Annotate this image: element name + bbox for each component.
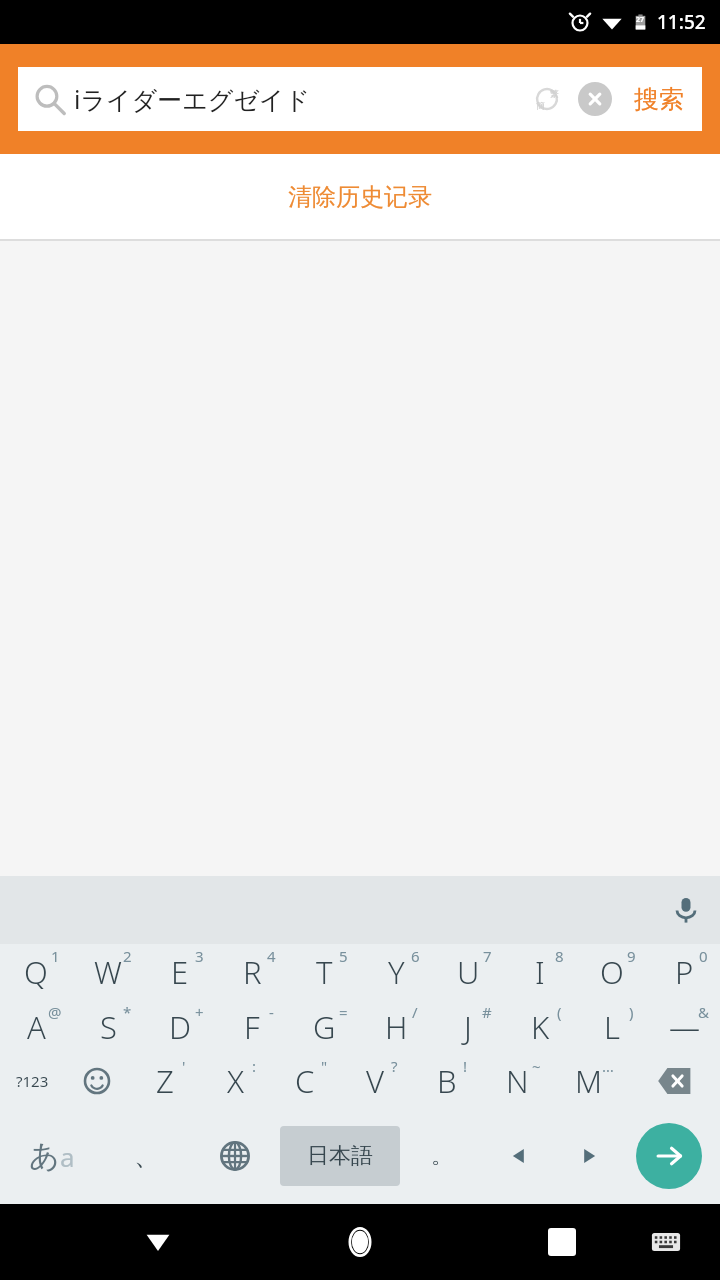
button[interactable]: X [200, 1054, 270, 1108]
staticText: ' [182, 1056, 186, 1076]
button[interactable]: V [340, 1054, 411, 1108]
staticText: U [457, 951, 480, 993]
staticText: ( [557, 1002, 562, 1022]
button[interactable]: Home [330, 1212, 390, 1272]
button[interactable]: P [648, 944, 720, 1000]
button[interactable]: Voice input [652, 876, 720, 944]
staticText: 清除历史记录 [288, 182, 432, 212]
staticText: ) [629, 1002, 634, 1022]
button[interactable]: B [411, 1054, 482, 1108]
staticText: = [339, 1002, 348, 1022]
staticText: - [269, 1002, 274, 1022]
button[interactable]: G [288, 1000, 360, 1054]
staticText: ? [391, 1056, 398, 1076]
button[interactable]: Z [130, 1054, 200, 1108]
button[interactable]: Clear text [578, 82, 612, 116]
staticText: @ [48, 1002, 62, 1022]
staticText: 、 [134, 1140, 160, 1173]
button[interactable]: K [504, 1000, 576, 1054]
button[interactable]: 、 [104, 1108, 190, 1204]
staticText: ?123 [16, 1071, 49, 1091]
button[interactable]: N [482, 1054, 553, 1108]
staticText: V [366, 1060, 385, 1102]
staticText: P [675, 951, 694, 993]
button[interactable]: E [144, 944, 216, 1000]
staticText: 7 [483, 946, 492, 966]
staticText: 。 [431, 1142, 453, 1170]
staticText: a [60, 1139, 75, 1174]
button[interactable]: 清除历史记录 [0, 154, 720, 239]
button[interactable]: A [0, 1000, 72, 1054]
button[interactable]: Move cursor left [484, 1108, 554, 1204]
button[interactable]: Symbols [0, 1054, 64, 1108]
button[interactable]: S [72, 1000, 144, 1054]
staticText: … [602, 1056, 614, 1076]
button[interactable]: W [72, 944, 144, 1000]
button[interactable]: Enter [636, 1123, 702, 1189]
button[interactable]: I [504, 944, 576, 1000]
staticText: F [244, 1006, 260, 1048]
staticText: R [243, 951, 262, 993]
button[interactable]: H [360, 1000, 432, 1054]
button[interactable]: L [576, 1000, 648, 1054]
staticText: A [27, 1006, 46, 1048]
staticText: C [295, 1060, 315, 1102]
staticText: 2 [123, 946, 132, 966]
staticText: 1 [51, 946, 60, 966]
button[interactable]: U [432, 944, 504, 1000]
button[interactable]: Move cursor right [554, 1108, 624, 1204]
button[interactable]: 搜索 [630, 84, 688, 115]
button[interactable]: — [648, 1000, 720, 1054]
button[interactable]: Hide keyboard [640, 1216, 692, 1268]
staticText: M [575, 1060, 603, 1102]
staticText: Z [156, 1060, 174, 1102]
button[interactable]: J [432, 1000, 504, 1054]
other: Search [32, 82, 66, 116]
button[interactable]: Q [0, 944, 72, 1000]
staticText: 繁 [550, 88, 559, 99]
staticText: 簡 [536, 100, 545, 111]
button[interactable]: Switch input mode [0, 1108, 104, 1204]
staticText: ~ [532, 1056, 541, 1076]
button[interactable]: C [270, 1054, 340, 1108]
button[interactable]: Back [130, 1214, 186, 1270]
button[interactable]: O [576, 944, 648, 1000]
staticText: 27 [636, 15, 645, 25]
staticText: / [412, 1002, 418, 1022]
staticText: D [169, 1006, 192, 1048]
button[interactable]: T [288, 944, 360, 1000]
button[interactable]: Simplified traditional toggle [528, 80, 566, 118]
button[interactable]: 。 [400, 1108, 484, 1204]
button[interactable]: M [553, 1054, 624, 1108]
button[interactable]: Search [18, 67, 702, 131]
button[interactable]: Backspace [624, 1054, 720, 1108]
staticText: N [506, 1060, 529, 1102]
button[interactable]: D [144, 1000, 216, 1054]
staticText: 日本語 [307, 1142, 373, 1170]
staticText: G [313, 1006, 336, 1048]
staticText: Y [388, 951, 405, 993]
staticText: 9 [627, 946, 636, 966]
staticText: # [482, 1002, 492, 1022]
staticText: " [321, 1056, 328, 1076]
staticText: * [123, 1002, 132, 1022]
staticText: E [171, 951, 189, 993]
staticText: W [94, 951, 122, 993]
staticText: & [698, 1002, 709, 1022]
button[interactable]: R [216, 944, 288, 1000]
button[interactable]: Emoji [64, 1054, 130, 1108]
button[interactable]: Recents [534, 1214, 590, 1270]
staticText: iライダーエグゼイド [74, 82, 311, 116]
staticText: — [669, 1006, 700, 1048]
staticText: J [464, 1006, 472, 1048]
button[interactable]: Change language [190, 1108, 280, 1204]
staticText: K [531, 1006, 550, 1048]
staticText: 4 [267, 946, 276, 966]
staticText: H [385, 1006, 408, 1048]
button[interactable]: Y [360, 944, 432, 1000]
staticText: 8 [555, 946, 564, 966]
staticText: 6 [411, 946, 420, 966]
staticText: L [604, 1006, 620, 1048]
button[interactable]: 日本語 [280, 1126, 400, 1186]
button[interactable]: F [216, 1000, 288, 1054]
